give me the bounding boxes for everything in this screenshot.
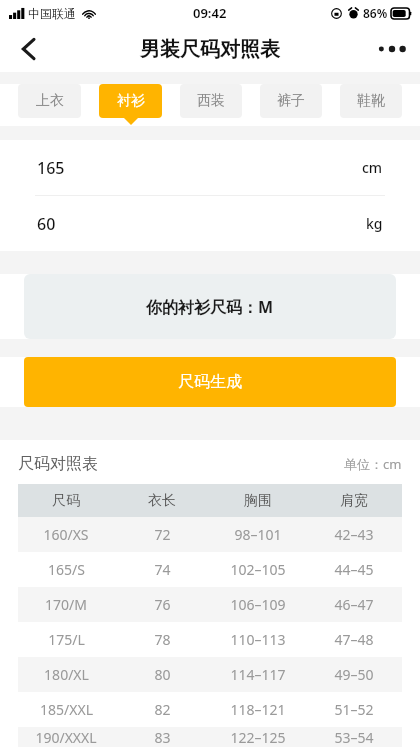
staticText: 你的衬衫尺码：M — [146, 296, 274, 318]
staticText: 165/S — [48, 560, 85, 579]
staticText: 46–47 — [334, 595, 374, 614]
staticText: 74 — [154, 560, 171, 579]
staticText: kg — [366, 214, 383, 233]
staticText: 80 — [154, 665, 171, 684]
staticText: 165 — [37, 157, 65, 179]
button[interactable]: 上衣 — [18, 84, 81, 118]
staticText: 49–50 — [334, 665, 374, 684]
staticText: 98–101 — [234, 525, 282, 544]
staticText: 86% — [363, 5, 388, 21]
button[interactable]: 180/XL — [18, 657, 402, 692]
staticText: 胸围 — [244, 492, 272, 510]
button[interactable]: 190/XXXL — [18, 727, 402, 747]
button[interactable]: More options — [370, 27, 414, 71]
staticText: 190/XXXL — [35, 728, 97, 747]
button[interactable]: 165/S — [18, 552, 402, 587]
staticText: 尺码 — [52, 492, 80, 510]
button[interactable]: 160/XS — [18, 517, 402, 552]
staticText: 鞋靴 — [357, 92, 385, 110]
button[interactable]: 165 — [21, 140, 399, 195]
staticText: 42–43 — [334, 525, 374, 544]
staticText: 47–48 — [334, 630, 374, 649]
staticText: 110–113 — [230, 630, 286, 649]
staticText: 上衣 — [36, 92, 64, 110]
staticText: 中国联通 — [28, 6, 76, 21]
staticText: 尺码对照表 — [18, 454, 98, 474]
button[interactable]: 175/L — [18, 622, 402, 657]
staticText: 裤子 — [277, 92, 305, 110]
staticText: 106–109 — [230, 595, 286, 614]
staticText: 72 — [154, 525, 171, 544]
button[interactable]: 尺码 — [18, 484, 402, 517]
staticText: 78 — [154, 630, 171, 649]
staticText: 44–45 — [334, 560, 374, 579]
button[interactable]: 西装 — [180, 84, 242, 118]
button[interactable]: 衬衫 — [99, 84, 162, 118]
staticText: 76 — [154, 595, 171, 614]
staticText: 175/L — [48, 630, 85, 649]
staticText: 60 — [37, 213, 56, 235]
button[interactable]: Back — [6, 27, 50, 71]
staticText: 122–125 — [230, 728, 286, 747]
staticText: 西装 — [197, 92, 225, 110]
staticText: 185/XXL — [40, 700, 93, 719]
button[interactable]: 170/M — [18, 587, 402, 622]
staticText: 114–117 — [230, 665, 286, 684]
button[interactable]: 尺码生成 — [24, 357, 396, 407]
staticText: 180/XL — [44, 665, 89, 684]
staticText: cm — [362, 158, 383, 177]
staticText: 51–52 — [334, 700, 374, 719]
staticText: 82 — [154, 700, 171, 719]
staticText: 160/XS — [43, 525, 89, 544]
staticText: 衬衫 — [117, 92, 145, 110]
staticText: 53–54 — [334, 728, 374, 747]
staticText: 170/M — [45, 595, 87, 614]
staticText: 肩宽 — [340, 492, 368, 510]
button[interactable]: 185/XXL — [18, 692, 402, 727]
button[interactable]: 裤子 — [260, 84, 322, 118]
staticText: 83 — [154, 728, 171, 747]
button[interactable]: 60 — [21, 196, 399, 251]
button[interactable]: 鞋靴 — [340, 84, 402, 118]
staticText: 118–121 — [230, 700, 286, 719]
staticText: 衣长 — [148, 492, 176, 510]
staticText: 单位：cm — [344, 455, 402, 473]
staticText: 尺码生成 — [178, 372, 242, 392]
staticText: 09:42 — [193, 4, 227, 22]
staticText: 102–105 — [230, 560, 286, 579]
staticText: 男装尺码对照表 — [140, 37, 280, 62]
